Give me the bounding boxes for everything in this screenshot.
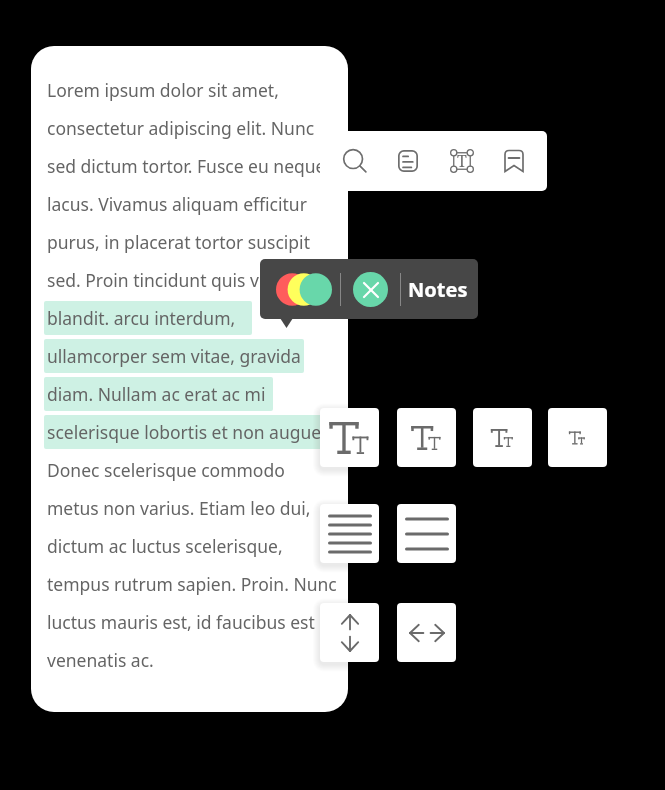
button[interactable]: Vertical spacing <box>320 603 379 662</box>
staticText: ullamcorper sem vitae, gravida <box>47 344 301 368</box>
button[interactable]: Colour <box>276 273 332 306</box>
staticText: consectetur adipiscing elit. Nunc <box>47 116 315 140</box>
staticText: purus, in placerat tortor suscipit <box>47 230 310 254</box>
staticText: lacus. Vivamus aliquam efficitur <box>47 192 307 216</box>
staticText: T <box>457 150 467 172</box>
button[interactable]: Font size small <box>548 408 607 467</box>
staticText: blandit. arcu interdum, <box>47 306 236 330</box>
staticText: sed dictum tortor. Fusce eu neque <box>47 154 326 178</box>
button[interactable]: Bookmark <box>488 131 540 191</box>
staticText: Lorem ipsum dolor sit amet, <box>47 78 279 102</box>
staticText: metus non varius. Etiam leo dui, <box>47 496 311 520</box>
staticText: diam. Nullam ac erat ac mi <box>47 382 266 406</box>
button[interactable]: Text box <box>436 131 488 191</box>
button[interactable]: Wide line spacing <box>397 504 456 563</box>
button[interactable]: Lorem ipsum dolor sit amet, <box>31 46 348 712</box>
staticText: Notes <box>408 276 468 303</box>
staticText: scelerisque lobortis et non augue. <box>47 420 326 444</box>
button[interactable]: Compact line spacing <box>320 504 379 563</box>
button[interactable]: Search <box>329 131 381 191</box>
staticText: Donec scelerisque commodo <box>47 458 285 482</box>
button[interactable]: Horizontal spacing <box>397 603 456 662</box>
button[interactable]: Notes list <box>382 131 434 191</box>
staticText: dictum ac luctus scelerisque, <box>47 534 283 558</box>
button[interactable]: Close <box>353 272 388 307</box>
button[interactable]: Font size medium <box>473 408 532 467</box>
button[interactable]: Font size extra large <box>320 408 379 467</box>
staticText: tempus rutrum sapien. Proin. Nunc <box>47 572 337 596</box>
staticText: venenatis ac. <box>47 648 154 672</box>
staticText: sed. Proin tincidunt quis velit <box>47 268 285 292</box>
button[interactable]: Font size large <box>397 408 456 467</box>
staticText: luctus mauris est, id faucibus est <box>47 610 315 634</box>
